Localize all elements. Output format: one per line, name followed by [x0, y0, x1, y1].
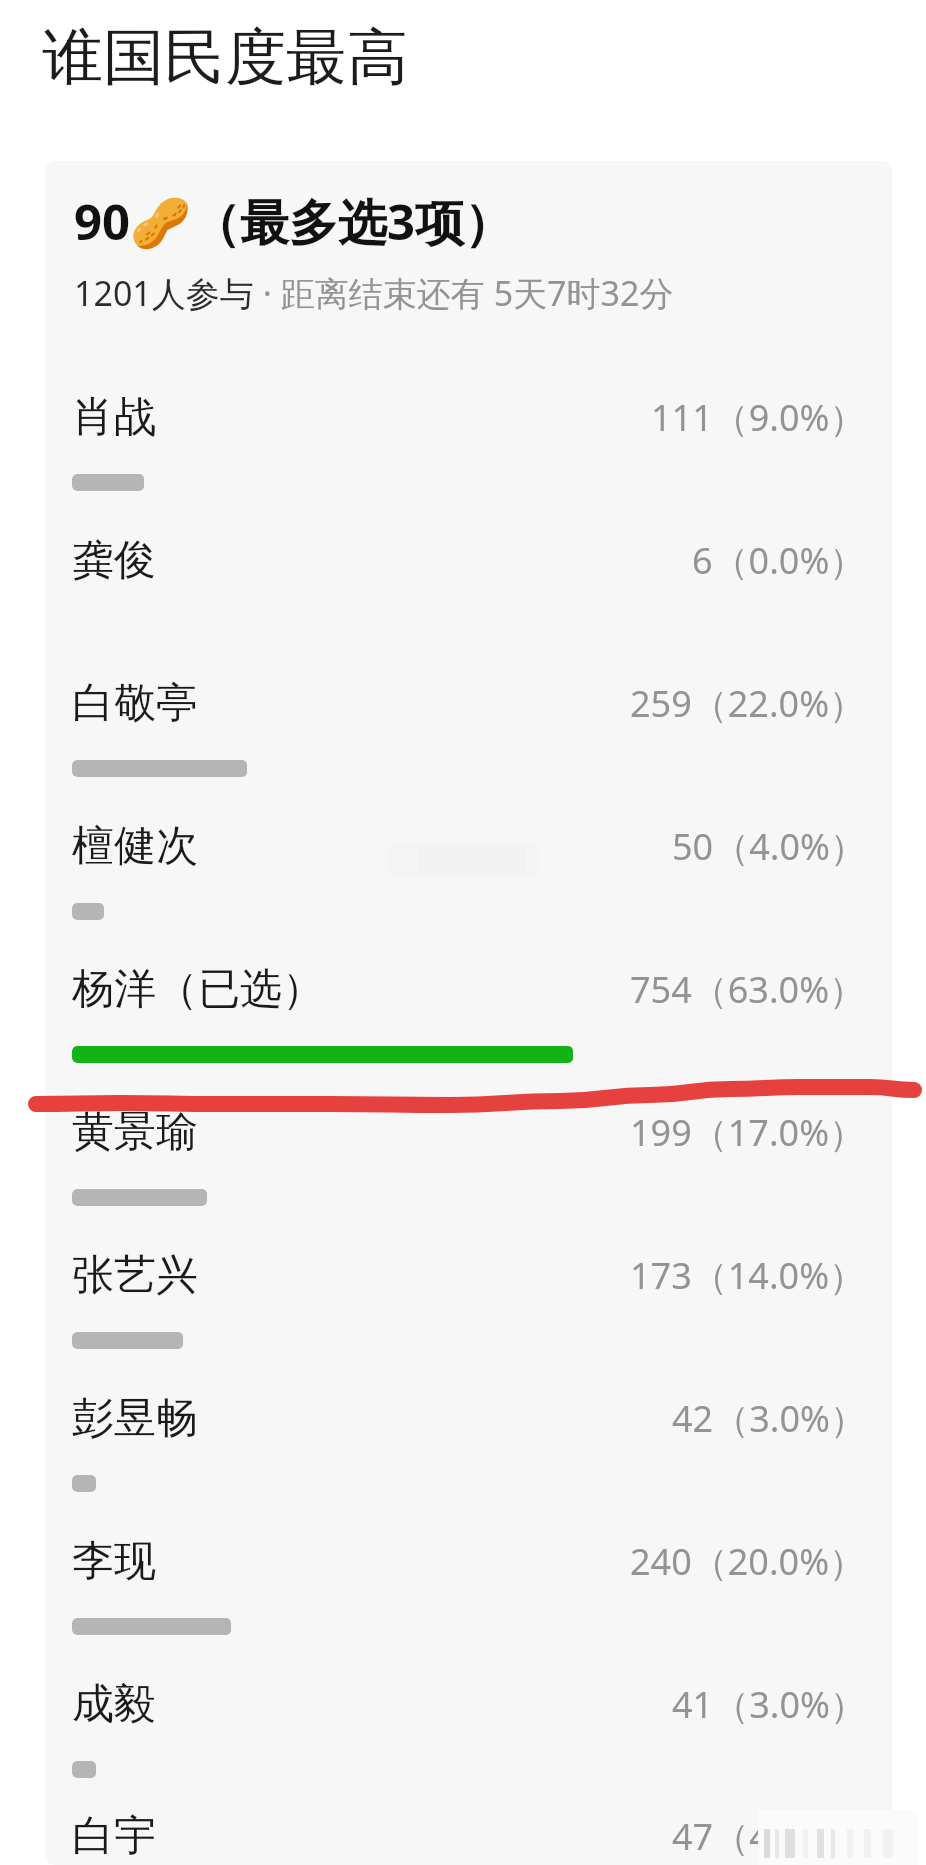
staticText: 杨洋（已选）: [72, 963, 324, 1016]
staticText: · 距离结束还有 5天7时32分: [254, 270, 674, 316]
staticText: 檀健次: [72, 820, 198, 873]
button[interactable]: 龚俊: [45, 521, 892, 664]
button[interactable]: 成毅: [45, 1665, 892, 1808]
staticText: 张艺兴: [72, 1249, 198, 1302]
staticText: 41（3.0%）: [672, 1680, 866, 1729]
staticText: 90🥜（最多选3项）: [74, 188, 514, 255]
staticText: 240（20.0%）: [630, 1537, 866, 1586]
staticText: 成毅: [72, 1678, 156, 1731]
staticText: 47（4.0%）: [672, 1812, 866, 1861]
staticText: 白宇: [72, 1810, 156, 1863]
button[interactable]: 白宇: [45, 1808, 892, 1865]
button[interactable]: 黄景瑜: [45, 1093, 892, 1236]
staticText: 黄景瑜: [72, 1106, 198, 1159]
staticText: 肖战: [72, 391, 156, 444]
staticText: 龚俊: [72, 534, 156, 587]
staticText: 1201人参与: [74, 270, 254, 316]
button[interactable]: 张艺兴: [45, 1236, 892, 1379]
button[interactable]: 杨洋（已选）: [45, 950, 892, 1093]
button[interactable]: 肖战: [45, 378, 892, 521]
staticText: 199（17.0%）: [630, 1108, 866, 1157]
button[interactable]: 彭昱畅: [45, 1379, 892, 1522]
staticText: 259（22.0%）: [630, 679, 866, 728]
staticText: 彭昱畅: [72, 1392, 198, 1445]
staticText: 754（63.0%）: [630, 965, 866, 1014]
staticText: 6（0.0%）: [692, 536, 866, 585]
button[interactable]: 檀健次: [45, 807, 892, 950]
staticText: 白敬亭: [72, 677, 198, 730]
button[interactable]: 李现: [45, 1522, 892, 1665]
staticText: 42（3.0%）: [672, 1394, 866, 1443]
staticText: 50（4.0%）: [672, 822, 866, 871]
staticText: 李现: [72, 1535, 156, 1588]
other: Annotation: [0, 0, 926, 1865]
staticText: 173（14.0%）: [630, 1251, 866, 1300]
staticText: 谁国民度最高: [42, 19, 408, 96]
button[interactable]: 白敬亭: [45, 664, 892, 807]
staticText: 111（9.0%）: [651, 393, 866, 442]
